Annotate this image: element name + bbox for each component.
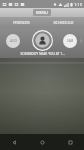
staticText: ALEX: [10, 39, 17, 43]
staticText: 1:15: [74, 2, 82, 7]
button[interactable]: SCHEDULE: [42, 17, 84, 28]
button[interactable]: MENU: [33, 9, 51, 16]
button[interactable]: Previous person: [6, 34, 20, 48]
button[interactable]: Recent apps: [56, 134, 84, 150]
button[interactable]: FRIENDS: [0, 17, 42, 28]
staticText: SCHEDULE: [53, 20, 74, 25]
staticText: SAM: [67, 39, 74, 43]
button[interactable]: Home: [28, 134, 56, 150]
button[interactable]: Next person: [63, 34, 77, 48]
staticText: FRIENDS: [13, 20, 30, 25]
staticText: MENU: [36, 10, 48, 15]
button[interactable]: Selected profile: [32, 30, 53, 51]
button[interactable]: Back: [0, 134, 28, 150]
staticText: SOMEBODY NEAR YOU AT 1…: [20, 52, 65, 56]
button[interactable]: Scroll right: [78, 38, 84, 44]
